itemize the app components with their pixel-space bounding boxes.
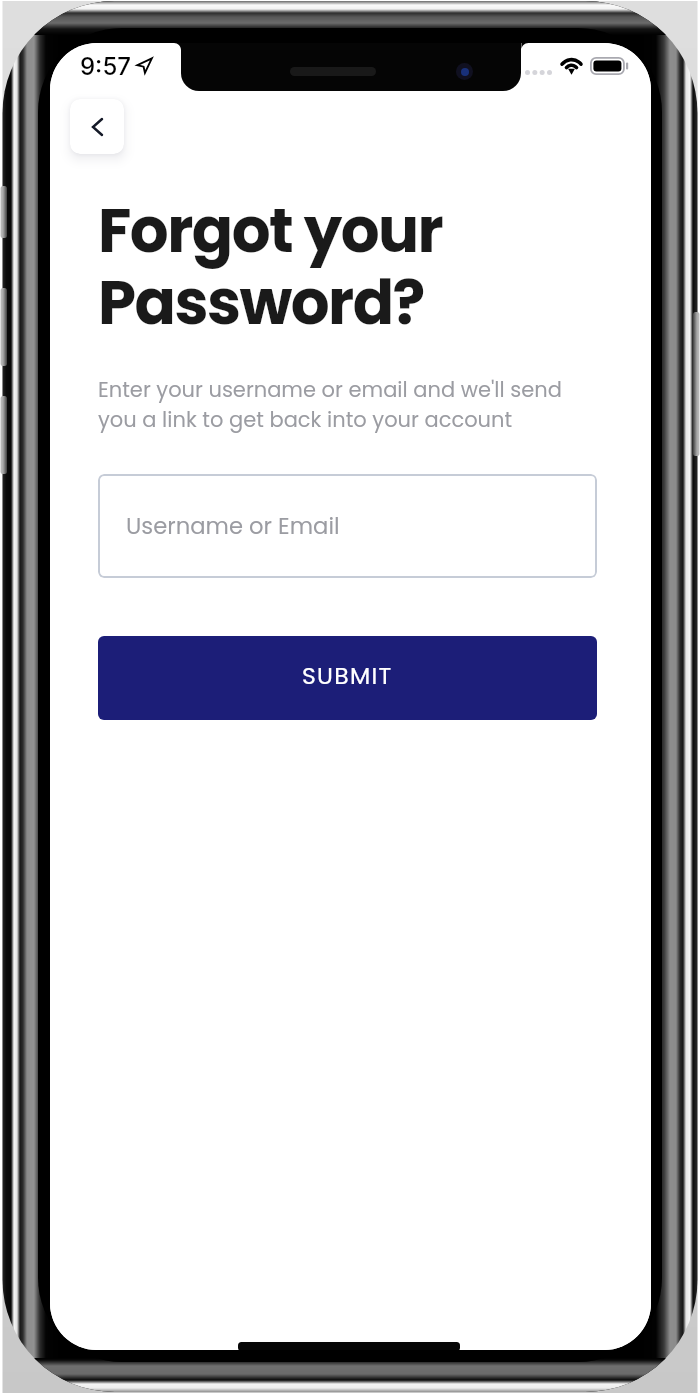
staticText: Forgot your Password?: [98, 188, 443, 345]
button[interactable]: Back: [70, 99, 124, 154]
button[interactable]: Username or Email: [98, 474, 597, 578]
staticText: SUBMIT: [302, 659, 393, 692]
staticText: Username or Email: [126, 510, 340, 542]
staticText: 9:57: [80, 52, 131, 81]
staticText: Enter your username or email and we'll s…: [98, 375, 562, 434]
button[interactable]: SUBMIT: [98, 636, 597, 720]
